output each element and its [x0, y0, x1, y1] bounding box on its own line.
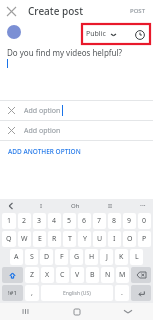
staticText: M: [119, 270, 126, 280]
button[interactable]: F: [55, 249, 68, 265]
staticText: !#1: [8, 289, 17, 297]
button[interactable]: Z: [25, 267, 39, 283]
staticText: B: [90, 270, 95, 280]
staticText: Public: [86, 29, 106, 39]
button[interactable]: X: [41, 267, 54, 283]
staticText: ,: [31, 288, 33, 298]
button[interactable]: N: [101, 267, 114, 283]
button[interactable]: Remove option: [0, 101, 153, 120]
button[interactable]: C: [56, 267, 69, 283]
button[interactable]: U: [93, 231, 106, 247]
button[interactable]: A: [10, 249, 23, 265]
button[interactable]: Q: [2, 231, 16, 247]
button[interactable]: M: [116, 267, 129, 283]
staticText: ···: [140, 201, 146, 211]
button[interactable]: T: [63, 231, 76, 247]
staticText: I: [40, 202, 43, 210]
staticText: C: [60, 270, 65, 280]
button[interactable]: I: [108, 231, 121, 247]
staticText: 4: [52, 216, 57, 226]
button[interactable]: Backspace: [131, 267, 151, 283]
button[interactable]: Home: [51, 303, 102, 320]
button[interactable]: D: [40, 249, 53, 265]
staticText: K: [119, 252, 124, 262]
button[interactable]: 4: [48, 213, 61, 229]
button[interactable]: Shift: [2, 267, 23, 283]
button[interactable]: O: [123, 231, 136, 247]
staticText: I: [113, 234, 116, 244]
button[interactable]: 7: [93, 213, 106, 229]
staticText: 7: [97, 216, 102, 226]
button[interactable]: H: [85, 249, 98, 265]
button[interactable]: Previous: [5, 200, 16, 211]
button[interactable]: G: [70, 249, 83, 265]
button[interactable]: !#1: [2, 285, 23, 301]
staticText: J: [106, 252, 108, 262]
button[interactable]: POST: [123, 3, 153, 19]
staticText: Oh: [71, 202, 80, 210]
staticText: G: [74, 252, 80, 262]
button[interactable]: E: [33, 231, 46, 247]
staticText: Create post: [28, 4, 84, 18]
staticText: S: [30, 252, 34, 262]
button[interactable]: Remove option: [0, 121, 153, 140]
button[interactable]: R: [48, 231, 61, 247]
button[interactable]: Schedule: [133, 28, 146, 41]
button[interactable]: Enter: [131, 285, 151, 301]
button[interactable]: Y: [78, 231, 91, 247]
button[interactable]: 9: [123, 213, 136, 229]
button[interactable]: 2: [18, 213, 31, 229]
staticText: T: [68, 234, 72, 244]
staticText: X: [45, 270, 50, 280]
button[interactable]: Recents: [0, 303, 51, 320]
button[interactable]: ADD ANOTHER OPTION: [0, 141, 153, 161]
button[interactable]: W: [18, 231, 31, 247]
staticText: H: [89, 252, 95, 262]
staticText: Z: [30, 270, 35, 280]
button[interactable]: 8: [108, 213, 121, 229]
other: Remove option: [6, 125, 17, 136]
staticText: A: [14, 252, 19, 262]
button[interactable]: ,: [25, 285, 39, 301]
staticText: Do you find my videos helpful?: [7, 47, 123, 58]
button[interactable]: 3: [33, 213, 46, 229]
button[interactable]: J: [100, 249, 113, 265]
button[interactable]: V: [71, 267, 84, 283]
staticText: L: [135, 252, 139, 262]
staticText: W: [21, 234, 28, 244]
staticText: 3: [37, 216, 42, 226]
staticText: V: [75, 270, 80, 280]
button[interactable]: 6: [78, 213, 91, 229]
button[interactable]: More: [137, 200, 148, 211]
button[interactable]: L: [130, 249, 143, 265]
staticText: 2: [22, 216, 27, 226]
button[interactable]: Profile: [7, 25, 21, 39]
staticText: F: [60, 252, 64, 262]
button[interactable]: .: [115, 285, 129, 301]
button[interactable]: Close: [0, 0, 22, 22]
staticText: O: [127, 234, 133, 244]
staticText: Q: [6, 234, 12, 244]
staticText: N: [105, 270, 111, 280]
button[interactable]: K: [115, 249, 128, 265]
staticText: English (US): [63, 290, 91, 297]
staticText: Add option: [24, 126, 61, 136]
staticText: Y: [83, 234, 87, 244]
button[interactable]: B: [86, 267, 99, 283]
staticText: 8: [112, 216, 117, 226]
button[interactable]: Public: [86, 29, 116, 39]
staticText: Add option: [24, 106, 61, 116]
button[interactable]: 5: [63, 213, 76, 229]
other: Remove option: [6, 105, 17, 116]
staticText: D: [44, 252, 50, 262]
button[interactable]: English (US): [41, 285, 113, 301]
button[interactable]: S: [25, 249, 38, 265]
button[interactable]: P: [138, 231, 151, 247]
staticText: U: [97, 234, 103, 244]
staticText: R: [52, 234, 57, 244]
staticText: 5: [67, 216, 72, 226]
button[interactable]: 0: [138, 213, 151, 229]
button[interactable]: 1: [2, 213, 16, 229]
staticText: II: [108, 202, 113, 210]
button[interactable]: Hide keyboard: [102, 303, 153, 320]
